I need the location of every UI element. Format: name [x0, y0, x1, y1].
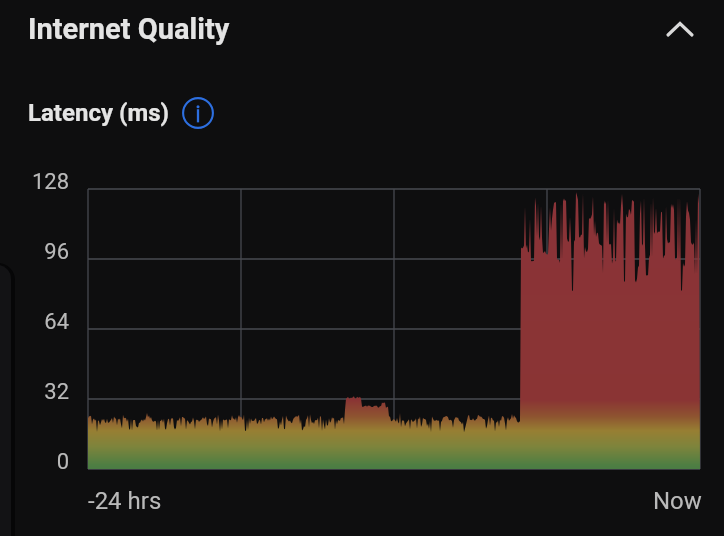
button[interactable]: About latency	[178, 93, 218, 133]
staticText: Internet Quality	[28, 12, 230, 46]
staticText: 64	[0, 309, 69, 335]
staticText: Latency (ms)	[28, 99, 169, 127]
staticText: 128	[0, 169, 69, 195]
button[interactable]: Collapse section	[652, 1, 708, 57]
staticText: -24 hrs	[88, 487, 162, 515]
staticText: 96	[0, 239, 69, 265]
staticText: 0	[0, 449, 69, 475]
staticText: 32	[0, 379, 69, 405]
button[interactable]: Internet Quality	[0, 0, 724, 58]
staticText: Now	[653, 487, 702, 515]
